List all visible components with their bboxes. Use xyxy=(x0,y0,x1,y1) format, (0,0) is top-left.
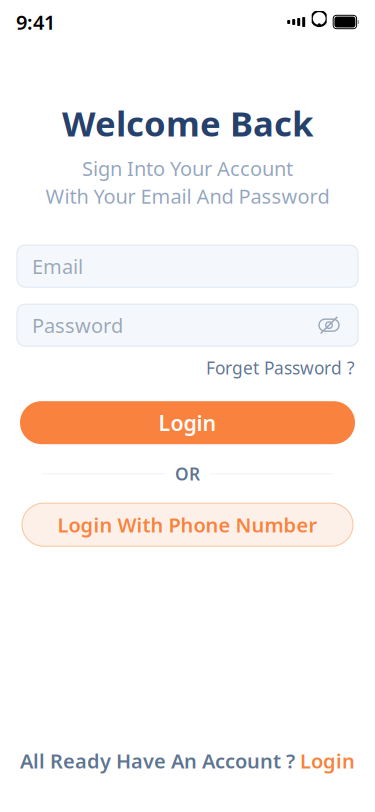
staticText: Sign Into Your Account xyxy=(82,155,293,182)
staticText: 9:41 xyxy=(16,9,55,35)
button[interactable]: Login xyxy=(20,401,355,444)
button[interactable]: All Ready Have An Account ? xyxy=(20,747,355,774)
staticText: Password xyxy=(32,312,123,338)
button[interactable]: Show password xyxy=(315,311,343,339)
staticText: Email xyxy=(32,253,83,279)
staticText: All Ready Have An Account ? xyxy=(20,747,295,774)
staticText: Forget Password ? xyxy=(206,356,355,379)
staticText: With Your Email And Password xyxy=(45,183,329,209)
staticText: Login xyxy=(300,747,355,774)
staticText: Login With Phone Number xyxy=(57,511,317,538)
staticText: OR xyxy=(175,462,200,485)
button[interactable]: Login With Phone Number xyxy=(22,503,353,546)
button[interactable]: Forget Password ? xyxy=(206,356,355,379)
staticText: Welcome Back xyxy=(62,100,313,146)
staticText: Login xyxy=(158,408,216,437)
